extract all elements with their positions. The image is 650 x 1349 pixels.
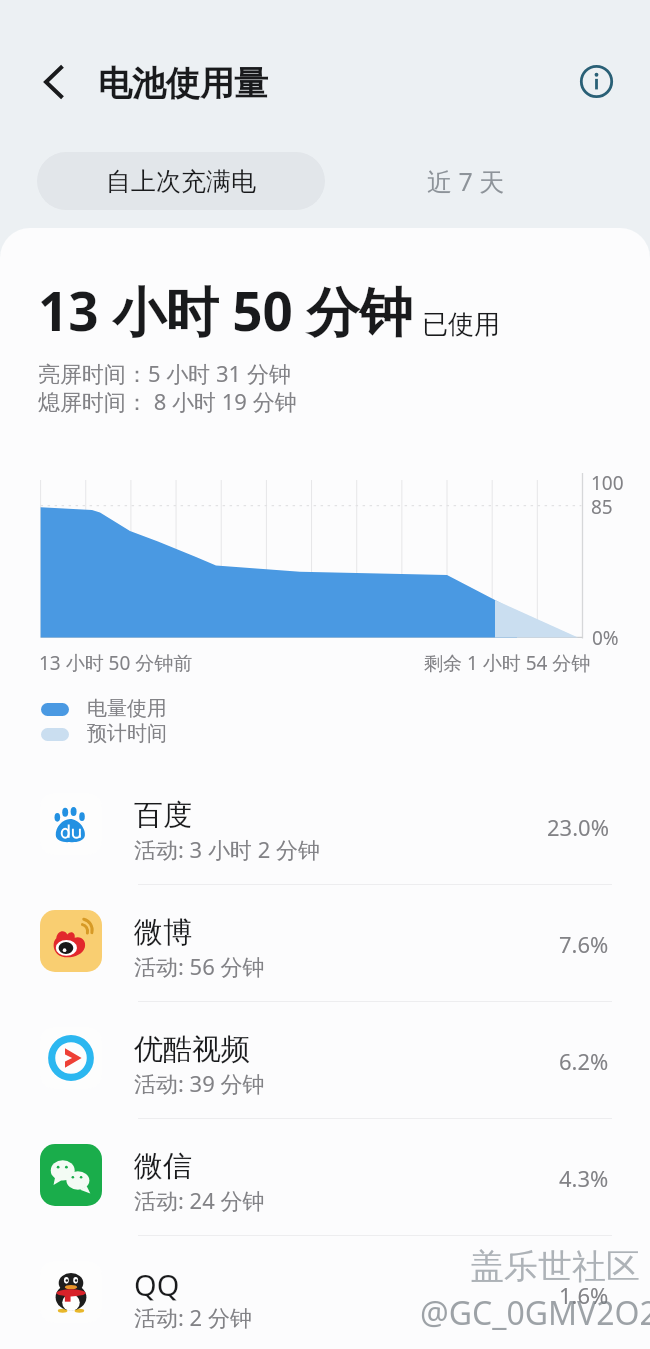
staticText: 已使用 <box>422 308 500 341</box>
staticText: 盖乐世社区 <box>470 1245 640 1288</box>
staticText: 7.6% <box>559 929 609 959</box>
button[interactable]: QQ <box>0 1236 650 1349</box>
staticText: 23.0% <box>547 812 609 842</box>
staticText: 优酷视频 <box>134 1031 250 1068</box>
staticText: 4.3% <box>559 1163 609 1193</box>
staticText: 电量使用 <box>87 696 167 721</box>
staticText: 活动: 24 分钟 <box>134 1185 265 1215</box>
staticText: 活动: 56 分钟 <box>134 951 265 981</box>
staticText: 活动: 3 小时 2 分钟 <box>134 834 320 864</box>
staticText: 自上次充满电 <box>106 166 256 197</box>
staticText: 85 <box>591 494 613 520</box>
button[interactable]: 百度 <box>0 768 650 884</box>
staticText: 1.6% <box>559 1280 609 1310</box>
staticText: 13 小时 50 分钟 <box>38 274 413 346</box>
staticText: 活动: 2 分钟 <box>134 1302 252 1332</box>
button[interactable]: 近 7 天 <box>345 152 587 210</box>
button[interactable]: Back <box>29 57 79 107</box>
staticText: 微博 <box>134 914 192 951</box>
staticText: 活动: 39 分钟 <box>134 1068 265 1098</box>
staticText: 13 小时 50 分钟前 <box>39 650 193 676</box>
staticText: 熄屏时间： 8 小时 19 分钟 <box>38 386 297 416</box>
staticText: 微信 <box>134 1148 192 1185</box>
button[interactable]: Info <box>570 55 622 107</box>
staticText: 100 <box>591 470 624 496</box>
staticText: 电池使用量 <box>98 62 268 105</box>
staticText: 百度 <box>134 797 192 834</box>
button[interactable]: 微博 <box>0 885 650 1001</box>
staticText: 预计时间 <box>87 721 167 746</box>
staticText: @GC_0GMV2O2 <box>420 1291 650 1335</box>
button[interactable]: 自上次充满电 <box>37 152 325 210</box>
button[interactable]: 微信 <box>0 1119 650 1235</box>
staticText: 剩余 1 小时 54 分钟 <box>424 650 591 676</box>
staticText: QQ <box>134 1265 180 1304</box>
button[interactable]: 优酷视频 <box>0 1002 650 1118</box>
staticText: 6.2% <box>559 1046 609 1076</box>
staticText: 亮屏时间：5 小时 31 分钟 <box>38 358 291 388</box>
staticText: 近 7 天 <box>427 164 505 198</box>
staticText: 0% <box>592 625 619 651</box>
